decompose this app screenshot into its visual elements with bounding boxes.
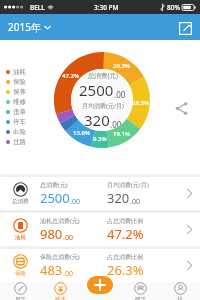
staticText: 油耗总消费(元) bbox=[40, 217, 80, 225]
staticText: 总消费(元) bbox=[40, 181, 68, 189]
staticText: 用车 bbox=[15, 296, 26, 300]
staticText: 保养 bbox=[13, 88, 26, 96]
staticText: 320 bbox=[84, 110, 110, 130]
staticText: 26.3% bbox=[113, 62, 131, 70]
button[interactable]: 用车 bbox=[0, 282, 40, 300]
staticText: 2500 bbox=[40, 189, 70, 207]
button[interactable]: 圈子 bbox=[120, 282, 160, 300]
staticText: 15.6% bbox=[73, 129, 91, 137]
staticText: 停车 bbox=[13, 118, 26, 126]
staticText: .00 bbox=[110, 119, 122, 130]
staticText: 47.2% bbox=[62, 72, 80, 80]
staticText: 账本 bbox=[55, 296, 66, 300]
button[interactable]: 保险 bbox=[0, 249, 200, 282]
button[interactable]: 2015年 bbox=[0, 16, 57, 38]
staticText: .00 bbox=[63, 269, 73, 279]
staticText: 保险 bbox=[15, 270, 26, 277]
staticText: .00 bbox=[63, 233, 73, 243]
button[interactable]: Edit bbox=[171, 14, 200, 40]
staticText: 我 bbox=[177, 296, 183, 300]
staticText: 19.1% bbox=[113, 130, 131, 138]
staticText: 总消费(元) bbox=[88, 71, 118, 80]
staticText: 26.3% bbox=[107, 261, 144, 279]
staticText: 9.3% bbox=[93, 135, 107, 143]
button[interactable]: 账本 bbox=[40, 282, 80, 300]
staticText: 483 bbox=[40, 261, 63, 279]
staticText: 320 bbox=[107, 189, 130, 207]
staticText: 保险 bbox=[13, 78, 26, 86]
staticText: 月均消费(元/月) bbox=[107, 181, 149, 189]
staticText: 2500 bbox=[79, 80, 114, 100]
staticText: .00 bbox=[130, 197, 140, 207]
staticText: 出险 bbox=[13, 128, 26, 136]
staticText: 占总消费比例 bbox=[107, 253, 143, 261]
staticText: 保险总消费(元) bbox=[40, 253, 80, 261]
staticText: 2015年 bbox=[8, 20, 41, 34]
staticText: 占总消费比例 bbox=[107, 217, 143, 225]
staticText: 过路 bbox=[13, 138, 26, 146]
button[interactable]: 总消费 bbox=[0, 177, 200, 210]
staticText: .00 bbox=[70, 197, 80, 207]
staticText: .00 bbox=[114, 89, 126, 100]
staticText: 28.5% bbox=[132, 99, 150, 107]
staticText: 980 bbox=[40, 225, 63, 243]
staticText: 油耗 bbox=[15, 234, 26, 241]
staticText: 违章 bbox=[13, 108, 26, 116]
staticText: 月均消费(元/月) bbox=[82, 102, 124, 110]
staticText: 3:30 PM bbox=[94, 3, 119, 12]
button[interactable]: 油耗 bbox=[0, 213, 200, 246]
staticText: BELL bbox=[30, 3, 45, 12]
button[interactable]: Share bbox=[171, 98, 192, 119]
staticText: 总消费 bbox=[12, 198, 29, 205]
staticText: 圈子 bbox=[135, 296, 146, 300]
button[interactable]: Add bbox=[87, 276, 113, 294]
staticText: 维修 bbox=[13, 98, 26, 106]
staticText: 油耗 bbox=[13, 68, 26, 76]
staticText: 47.2% bbox=[107, 225, 144, 243]
staticText: 80% bbox=[167, 3, 180, 12]
button[interactable]: 我 bbox=[160, 282, 200, 300]
